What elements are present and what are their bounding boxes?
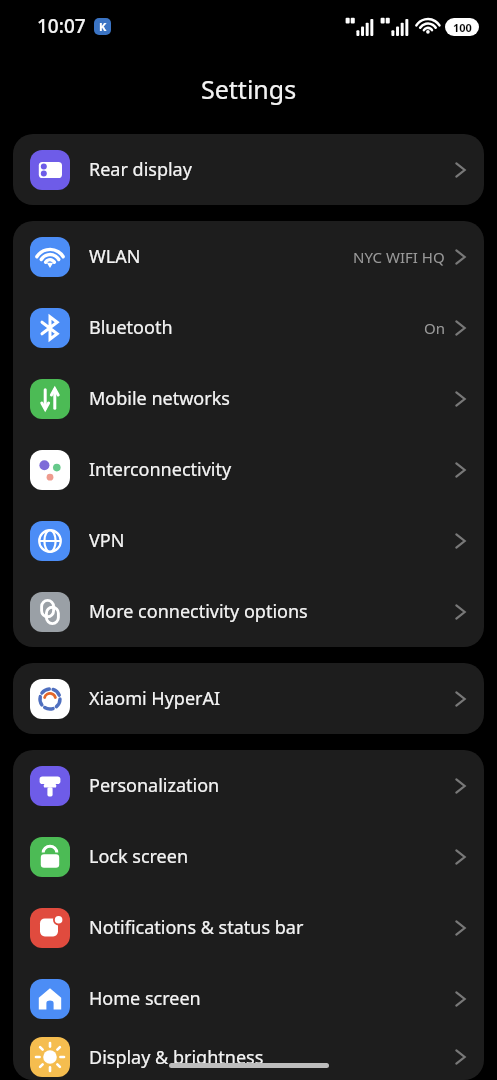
staticText: WLAN	[89, 244, 353, 269]
staticText: Lock screen	[89, 844, 454, 869]
button[interactable]: Mobile networks	[13, 363, 484, 434]
button[interactable]: Display & brightness	[13, 1034, 484, 1080]
staticText: VPN	[89, 528, 454, 553]
staticText: Xiaomi HyperAI	[89, 686, 454, 711]
staticText: NYC WIFI HQ	[353, 247, 445, 267]
staticText: 10:07	[37, 13, 86, 39]
button[interactable]: Personalization	[13, 750, 484, 821]
staticText: Notifications & status bar	[89, 915, 454, 940]
button[interactable]: Lock screen	[13, 821, 484, 892]
button[interactable]: Home screen	[13, 963, 484, 1034]
staticText: Personalization	[89, 773, 454, 798]
button[interactable]: Notifications & status bar	[13, 892, 484, 963]
staticText: Mobile networks	[89, 386, 454, 411]
staticText: More connectivity options	[89, 599, 454, 624]
staticText: Display & brightness	[89, 1045, 454, 1070]
staticText: Home screen	[89, 986, 454, 1011]
button[interactable]: WLAN	[13, 221, 484, 292]
staticText: 100	[453, 20, 472, 35]
staticText: On	[424, 318, 445, 338]
button[interactable]: Interconnectivity	[13, 434, 484, 505]
staticText: Interconnectivity	[89, 457, 454, 482]
staticText: Settings	[201, 72, 297, 106]
button[interactable]: Xiaomi HyperAI	[13, 663, 484, 734]
button[interactable]: Bluetooth	[13, 292, 484, 363]
button[interactable]: More connectivity options	[13, 576, 484, 647]
button[interactable]: VPN	[13, 505, 484, 576]
staticText: K	[99, 19, 107, 34]
staticText: Rear display	[89, 157, 454, 182]
button[interactable]: Rear display	[13, 134, 484, 205]
staticText: Bluetooth	[89, 315, 424, 340]
